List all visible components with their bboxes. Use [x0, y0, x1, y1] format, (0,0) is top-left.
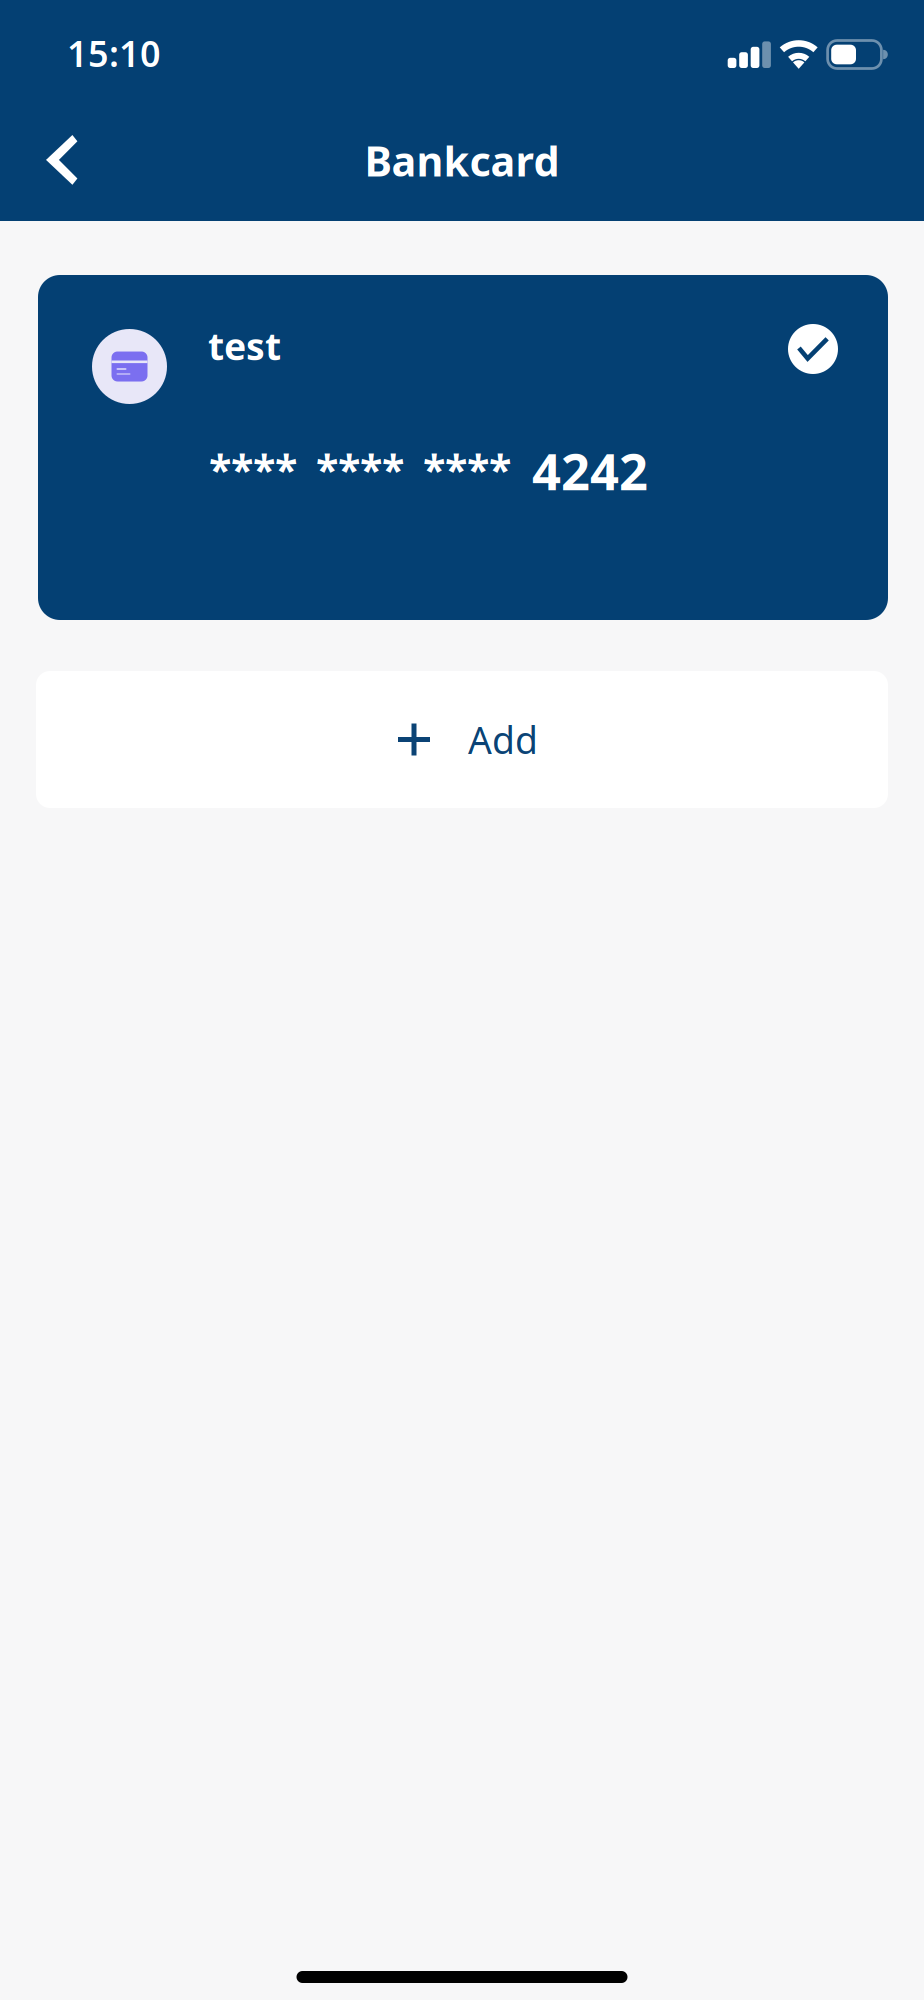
staticText: Add — [468, 715, 538, 764]
staticText: **** — [316, 441, 404, 496]
staticText: test — [208, 321, 281, 371]
staticText: 4242 — [532, 437, 648, 504]
staticText: 15:10 — [67, 29, 161, 77]
staticText: Bankcard — [364, 133, 559, 188]
staticText: **** — [423, 441, 511, 496]
button[interactable]: Add — [36, 671, 888, 808]
staticText: **** — [209, 441, 297, 496]
button[interactable]: test — [38, 275, 888, 620]
button[interactable]: Back — [17, 115, 113, 211]
